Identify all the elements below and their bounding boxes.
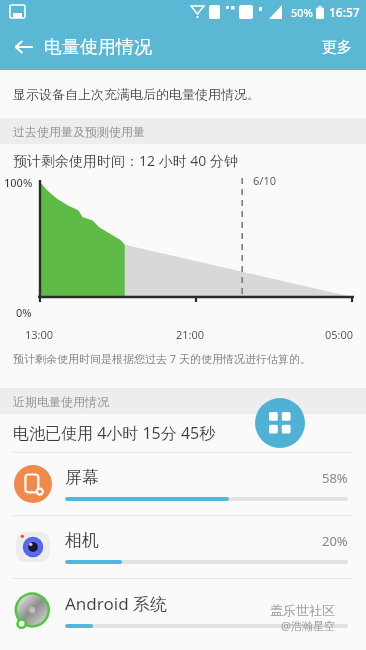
staticText: 屏幕	[65, 467, 322, 488]
staticText: 电池已使用 4小时 15分 45秒	[13, 422, 216, 444]
staticText: 电量使用情况	[44, 36, 152, 59]
button[interactable]: Android 系统	[0, 579, 366, 641]
staticText: 显示设备自上次充满电后的电量使用情况。	[13, 86, 260, 102]
staticText: 预计剩余使用时间：12 小时 40 分钟	[13, 151, 238, 170]
staticText: 100%	[4, 175, 33, 190]
button[interactable]: 更多	[308, 28, 366, 67]
staticText: 相机	[65, 530, 322, 551]
staticText: 更多	[322, 38, 352, 57]
staticText: 50%	[291, 5, 313, 20]
staticText: Android 系统	[65, 592, 348, 615]
staticText: 16:57	[329, 4, 360, 20]
staticText: 盖乐世社区	[270, 602, 335, 618]
staticText: @浩瀚星空	[281, 618, 335, 633]
staticText: 13:00	[25, 327, 54, 342]
staticText: 预计剩余使用时间是根据您过去 7 天的使用情况进行估算的。	[13, 351, 312, 366]
staticText: 6/10	[253, 173, 276, 188]
button[interactable]: 相机	[0, 516, 366, 578]
staticText: 58%	[322, 469, 348, 487]
staticText: 过去使用量及预测使用量	[13, 124, 145, 139]
staticText: 05:00	[325, 327, 354, 342]
staticText: 20%	[322, 532, 348, 550]
staticText: 21:00	[176, 327, 205, 342]
staticText: 近期电量使用情况	[13, 394, 109, 409]
button[interactable]: 屏幕	[0, 453, 366, 515]
button[interactable]: 应用列表	[255, 398, 305, 448]
button[interactable]: 返回	[6, 29, 42, 65]
staticText: 0%	[16, 305, 32, 320]
